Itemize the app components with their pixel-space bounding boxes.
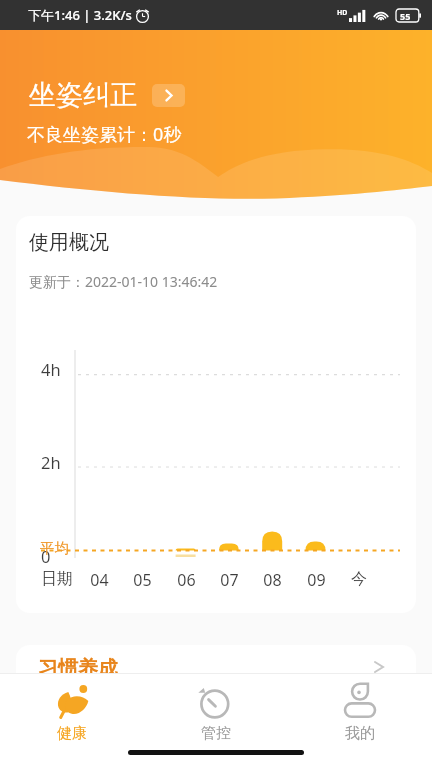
staticText: 坐姿纠正 <box>29 78 137 112</box>
staticText: 平均 <box>40 539 69 557</box>
button[interactable]: 进入坐姿纠正 <box>152 84 185 107</box>
staticText: 更新于：2022-01-10 13:46:42 <box>29 272 218 291</box>
staticText: 日期 <box>41 569 73 589</box>
staticText: 4h <box>41 358 61 380</box>
button[interactable]: 管控 <box>144 674 288 743</box>
button[interactable]: 我的 <box>288 674 432 743</box>
staticText: 08 <box>263 569 282 591</box>
staticText: HD <box>337 8 348 18</box>
staticText: 管控 <box>201 724 231 743</box>
staticText: 04 <box>90 569 109 591</box>
staticText: 55 <box>400 10 411 22</box>
staticText: 下午1:46 | 3.2K/s <box>28 6 132 24</box>
staticText: 我的 <box>345 724 375 743</box>
staticText: 07 <box>220 569 239 591</box>
staticText: 05 <box>133 569 152 591</box>
button[interactable]: 习惯养成 <box>16 645 416 715</box>
staticText: 2h <box>41 451 61 473</box>
staticText: 健康 <box>57 724 87 743</box>
staticText: 06 <box>177 569 196 591</box>
staticText: 使用概况 <box>29 230 109 255</box>
staticText: 习惯养成 <box>38 656 118 681</box>
button[interactable]: 健康 <box>0 674 144 743</box>
staticText: 不良坐姿累计：0秒 <box>27 122 182 147</box>
button[interactable]: 使用概况 <box>16 216 416 613</box>
staticText: 0 <box>41 545 51 567</box>
staticText: 09 <box>307 569 326 591</box>
staticText: 今 <box>351 569 367 589</box>
